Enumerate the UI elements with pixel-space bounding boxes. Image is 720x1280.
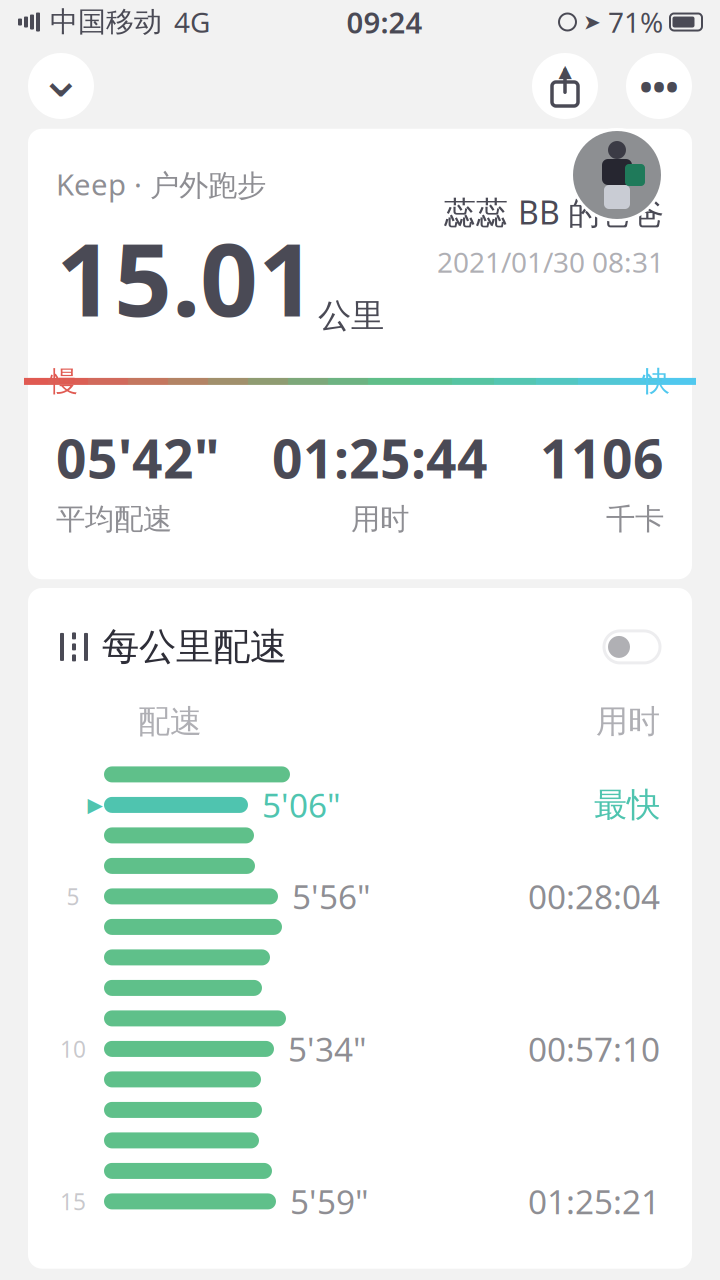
staticText: 05'42"	[56, 422, 220, 493]
staticText: 1106	[540, 422, 664, 493]
staticText: 71%	[608, 3, 663, 41]
button[interactable]: More	[626, 53, 692, 119]
staticText: 00:57:10	[528, 1027, 660, 1071]
staticText: 09:24	[346, 2, 422, 41]
staticText: 15.01	[56, 210, 316, 344]
staticText: 中国移动	[50, 5, 162, 39]
button[interactable]: Close	[28, 53, 94, 119]
staticText: 快	[642, 364, 670, 399]
staticText: 15	[60, 1186, 86, 1216]
staticText: 慢	[50, 364, 78, 399]
staticText: Keep · 户外跑步	[56, 165, 266, 204]
staticText: 每公里配速	[102, 624, 287, 670]
staticText: 00:28:04	[528, 874, 660, 919]
staticText: 5'59"	[290, 1179, 369, 1224]
button[interactable]: Share	[532, 53, 598, 119]
button[interactable]: 每公里配速开关	[604, 631, 660, 663]
staticText: ⌄	[38, 48, 83, 108]
staticText: ➤	[583, 10, 601, 34]
staticText: 5'34"	[288, 1027, 367, 1071]
staticText: 用时	[351, 501, 409, 537]
staticText: 5'56"	[292, 874, 371, 919]
staticText: 5'06"	[262, 783, 341, 827]
staticText: 10	[60, 1034, 86, 1064]
staticText: ▲	[558, 61, 571, 81]
staticText: 公里	[318, 295, 384, 336]
staticText: ▶	[87, 794, 102, 816]
staticText: 2021/01/30 08:31	[437, 243, 664, 280]
staticText: 5	[66, 881, 79, 911]
staticText: 配速	[138, 702, 202, 741]
staticText: 蕊蕊 BB 的爸爸	[444, 191, 664, 233]
staticText: •••	[639, 63, 678, 109]
staticText: 01:25:21	[528, 1179, 660, 1224]
staticText: 最快	[594, 784, 660, 825]
staticText: 01:25:44	[272, 422, 488, 493]
staticText: 用时	[596, 702, 660, 741]
staticText: 千卡	[606, 501, 664, 537]
staticText: 4G	[174, 3, 210, 41]
staticText: 平均配速	[56, 501, 172, 537]
